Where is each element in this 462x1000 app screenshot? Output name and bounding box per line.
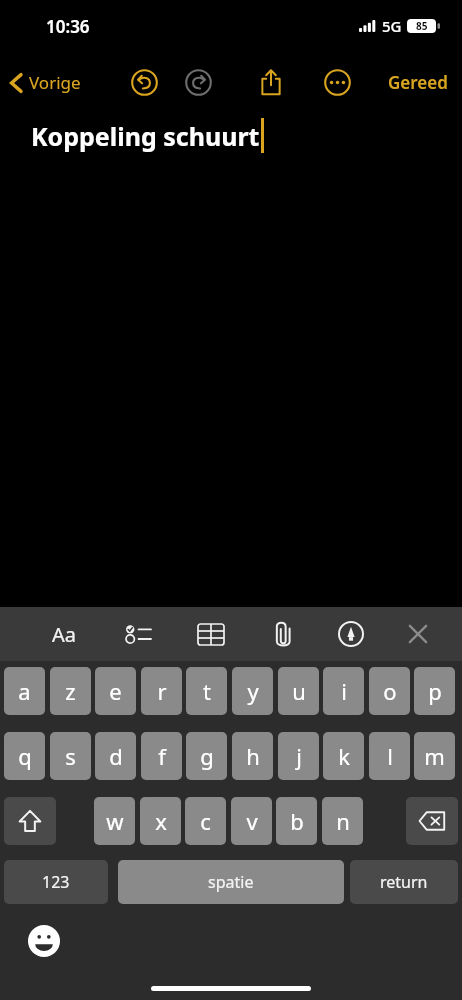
staticText: u [292, 676, 306, 706]
staticText: 10:36 [46, 15, 90, 38]
button[interactable]: v [231, 797, 272, 845]
staticText: q [18, 741, 32, 771]
button[interactable]: Shift [4, 797, 56, 845]
button[interactable]: Undo [124, 62, 164, 102]
staticText: v [246, 806, 258, 836]
button[interactable]: c [185, 797, 226, 845]
button[interactable]: Table [187, 610, 235, 658]
button[interactable]: Markup [327, 610, 375, 658]
button[interactable]: Backspace [406, 797, 458, 845]
staticText: j [296, 741, 302, 771]
staticText: h [246, 741, 260, 771]
button[interactable]: Redo [178, 62, 218, 102]
staticText: g [200, 741, 214, 771]
button[interactable]: Share [251, 62, 291, 102]
button[interactable]: y [232, 667, 273, 715]
staticText: Vorige [29, 71, 81, 94]
staticText: 123 [42, 871, 70, 893]
staticText: spatie [208, 871, 254, 893]
staticText: Aa [52, 621, 76, 648]
button[interactable]: e [95, 667, 136, 715]
button[interactable]: t [186, 667, 227, 715]
staticText: c [200, 806, 211, 836]
button[interactable]: h [232, 732, 273, 780]
staticText: f [158, 741, 166, 771]
staticText: b [290, 806, 304, 836]
staticText: n [336, 806, 350, 836]
button[interactable]: return [350, 860, 458, 904]
staticText: z [65, 676, 76, 706]
staticText: Gereed [388, 71, 448, 94]
button[interactable]: u [278, 667, 319, 715]
button[interactable]: Emoji [22, 919, 66, 963]
staticText: return [380, 871, 428, 893]
button[interactable]: w [94, 797, 135, 845]
staticText: 5G [382, 16, 402, 36]
button[interactable]: a [4, 667, 45, 715]
button[interactable]: More options [317, 62, 357, 102]
staticText: l [387, 741, 393, 771]
button[interactable]: s [50, 732, 91, 780]
staticText: t [203, 676, 211, 706]
staticText: m [424, 741, 445, 771]
button[interactable]: Vorige [0, 65, 89, 100]
button[interactable]: k [323, 732, 364, 780]
button[interactable]: r [141, 667, 182, 715]
button[interactable]: d [95, 732, 136, 780]
staticText: x [155, 806, 167, 836]
staticText: w [106, 806, 124, 836]
staticText: y [247, 676, 259, 706]
button[interactable]: Text format [40, 610, 88, 658]
staticText: 85 [416, 19, 428, 33]
button[interactable]: Close keyboard [394, 610, 442, 658]
button[interactable]: x [140, 797, 181, 845]
button[interactable]: Checklist [114, 610, 162, 658]
button[interactable]: o [369, 667, 410, 715]
button[interactable]: z [50, 667, 91, 715]
staticText: Koppeling schuurt [31, 119, 260, 153]
staticText: i [341, 676, 347, 706]
button[interactable]: 123 [4, 860, 108, 904]
staticText: r [157, 676, 167, 706]
staticText: e [109, 676, 122, 706]
button[interactable]: m [414, 732, 455, 780]
staticText: p [428, 676, 442, 706]
button[interactable]: Gereed [374, 65, 462, 100]
staticText: s [65, 741, 76, 771]
button[interactable]: l [369, 732, 410, 780]
button[interactable]: spatie [118, 860, 344, 904]
staticText: o [383, 676, 397, 706]
staticText: k [338, 741, 350, 771]
button[interactable]: n [322, 797, 363, 845]
button[interactable]: q [4, 732, 45, 780]
button[interactable]: Attach [259, 610, 307, 658]
staticText: a [18, 676, 31, 706]
button[interactable]: i [323, 667, 364, 715]
button[interactable]: f [141, 732, 182, 780]
staticText: d [109, 741, 123, 771]
button[interactable]: b [276, 797, 317, 845]
button[interactable]: g [186, 732, 227, 780]
button[interactable]: p [414, 667, 455, 715]
button[interactable]: j [278, 732, 319, 780]
